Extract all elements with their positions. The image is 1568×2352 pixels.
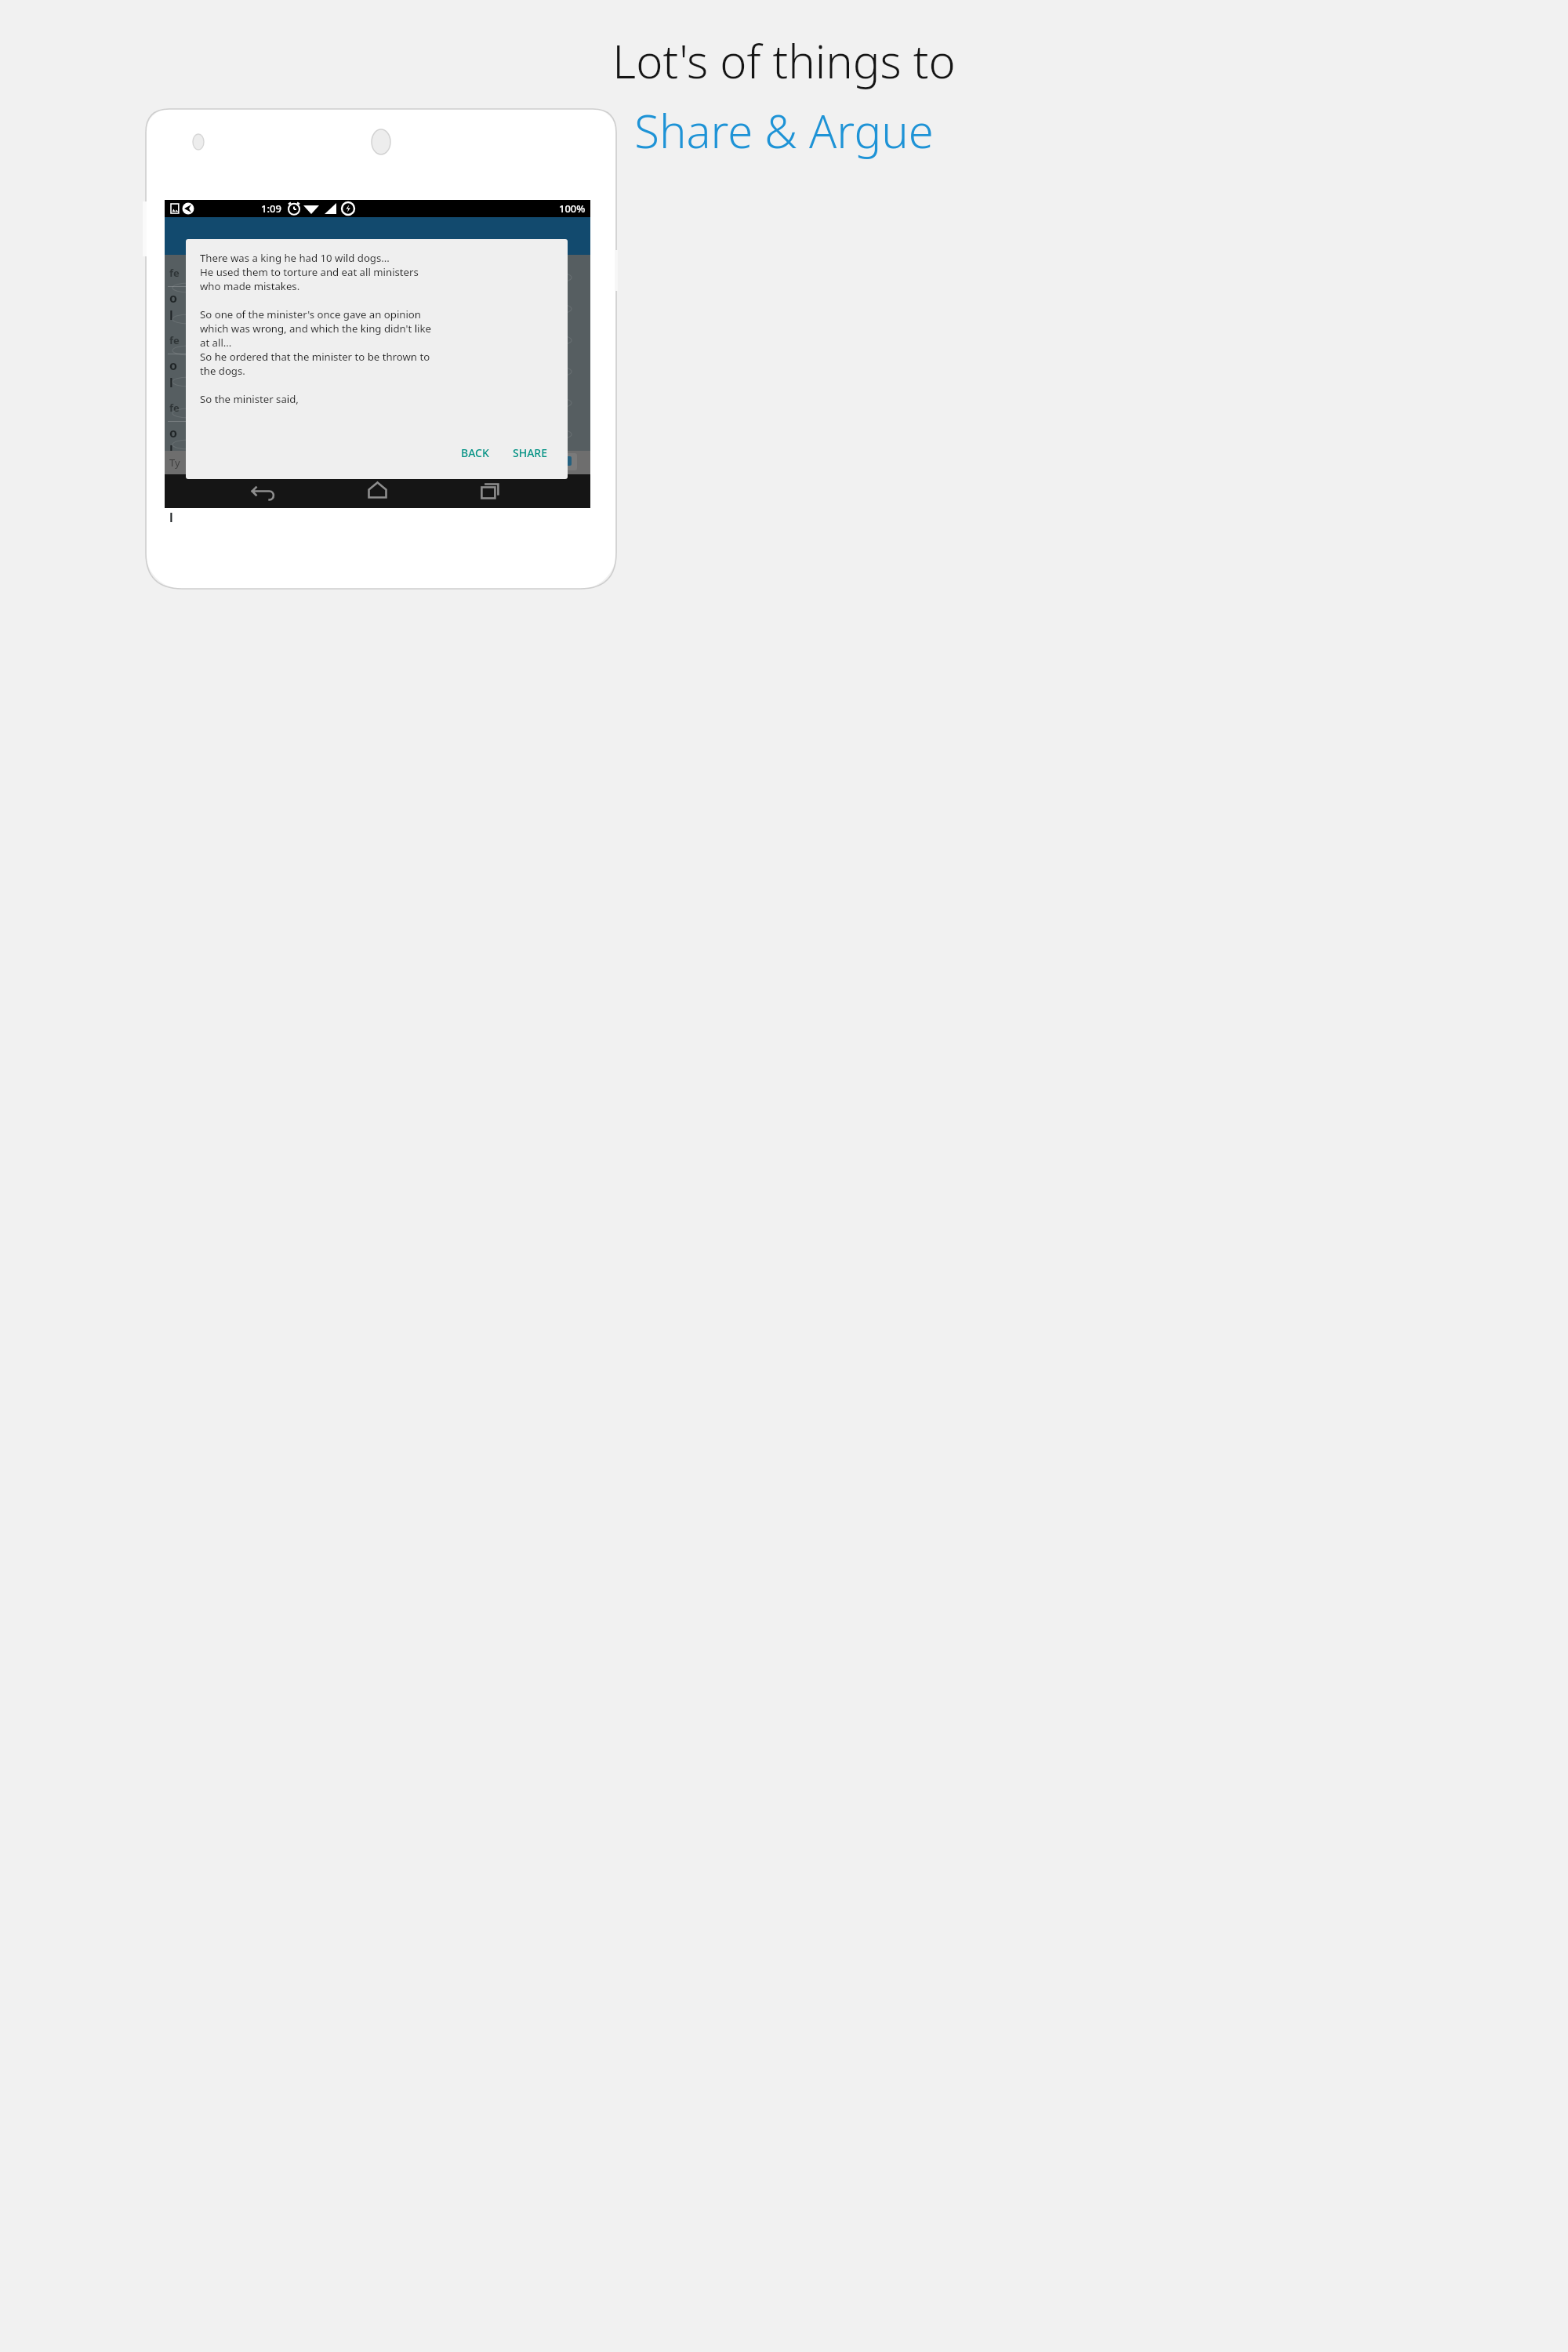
button[interactable]: Home bbox=[307, 474, 448, 508]
staticText: Share & Argue bbox=[634, 100, 934, 162]
button[interactable]: Recents bbox=[448, 474, 590, 508]
staticText: fe bbox=[169, 333, 180, 347]
staticText: o bbox=[169, 492, 178, 509]
button[interactable]: Back bbox=[165, 474, 307, 508]
staticText: Ty bbox=[169, 456, 180, 470]
staticText: SHARE bbox=[513, 445, 547, 460]
staticText: 1:09 bbox=[261, 201, 281, 216]
staticText: o bbox=[169, 289, 178, 307]
staticText: 100% bbox=[559, 201, 586, 216]
staticText: fe bbox=[169, 266, 180, 280]
staticText: o bbox=[169, 424, 178, 441]
staticText: l bbox=[169, 441, 173, 459]
staticText: fe bbox=[169, 401, 180, 415]
staticText: Lot's of things to bbox=[612, 30, 956, 92]
staticText: l bbox=[169, 509, 173, 526]
staticText: fe bbox=[169, 468, 180, 482]
staticText: l bbox=[169, 307, 173, 324]
staticText: o bbox=[169, 357, 178, 374]
staticText: l bbox=[169, 374, 173, 391]
button[interactable]: SHARE bbox=[505, 441, 555, 465]
staticText: There was a king he had 10 wild dogs... … bbox=[200, 251, 431, 408]
staticText: BACK bbox=[461, 445, 489, 460]
button[interactable]: BACK bbox=[453, 441, 497, 465]
